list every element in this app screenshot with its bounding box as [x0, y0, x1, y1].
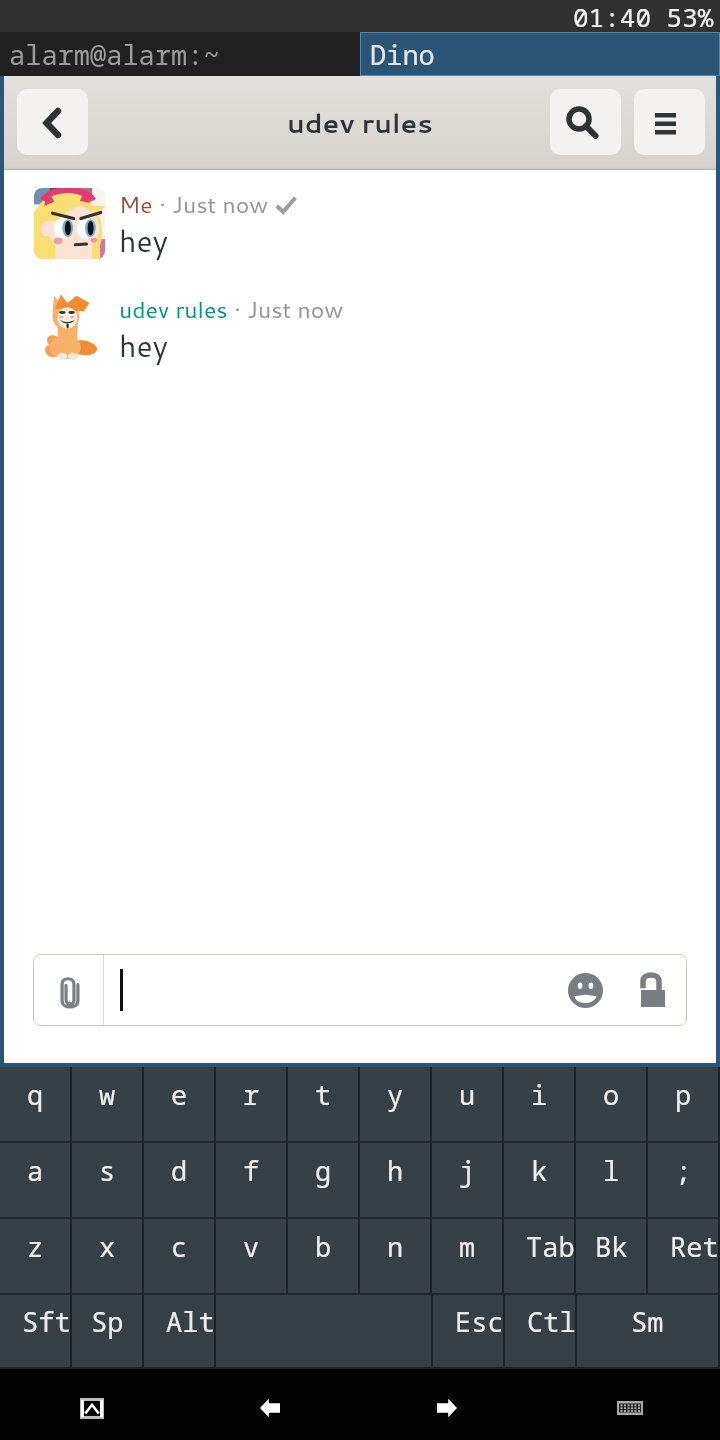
- staticText: m: [459, 1228, 476, 1265]
- button[interactable]: Ret: [648, 1219, 718, 1293]
- button[interactable]: a: [0, 1143, 70, 1217]
- staticText: hey: [119, 219, 169, 261]
- button[interactable]: x: [72, 1219, 142, 1293]
- staticText: r: [243, 1076, 260, 1113]
- button[interactable]: Encryption: [619, 956, 687, 1024]
- staticText: a: [27, 1152, 44, 1189]
- button[interactable]: Screenshot: [72, 1388, 112, 1428]
- button[interactable]: o: [576, 1067, 646, 1141]
- staticText: p: [675, 1076, 692, 1113]
- button[interactable]: y: [360, 1067, 430, 1141]
- button[interactable]: alarm@alarm:~: [0, 32, 360, 76]
- staticText: l: [603, 1152, 620, 1189]
- staticText: e: [171, 1076, 188, 1113]
- button[interactable]: q: [0, 1067, 70, 1141]
- staticText: s: [99, 1152, 116, 1189]
- staticText: h: [387, 1152, 404, 1189]
- button[interactable]: g: [288, 1143, 358, 1217]
- staticText: alarm@alarm:~: [9, 36, 220, 73]
- button[interactable]: e: [144, 1067, 214, 1141]
- staticText: z: [27, 1228, 44, 1265]
- button[interactable]: Menu: [634, 89, 705, 155]
- button[interactable]: Sm: [577, 1295, 718, 1367]
- staticText: k: [531, 1152, 548, 1189]
- staticText: n: [387, 1228, 404, 1265]
- staticText: Tab: [526, 1228, 575, 1265]
- staticText: g: [315, 1152, 332, 1189]
- button[interactable]: v: [216, 1219, 286, 1293]
- button[interactable]: k: [504, 1143, 574, 1217]
- button[interactable]: l: [576, 1143, 646, 1217]
- button[interactable]: d: [144, 1143, 214, 1217]
- staticText: j: [459, 1152, 476, 1189]
- button[interactable]: ;: [648, 1143, 718, 1217]
- button[interactable]: Keyboard: [610, 1388, 650, 1428]
- button[interactable]: c: [144, 1219, 214, 1293]
- staticText: d: [171, 1152, 188, 1189]
- button[interactable]: p: [648, 1067, 718, 1141]
- staticText: c: [171, 1228, 188, 1265]
- staticText: o: [603, 1076, 620, 1113]
- staticText: f: [243, 1152, 260, 1189]
- button[interactable]: Bk: [576, 1219, 646, 1293]
- staticText: hey: [119, 324, 169, 366]
- staticText: Esc: [455, 1303, 504, 1340]
- staticText: · Just now: [228, 293, 344, 326]
- staticText: 01:40 53%: [573, 0, 714, 31]
- staticText: y: [387, 1076, 404, 1113]
- staticText: Ret: [670, 1228, 719, 1265]
- staticText: t: [315, 1076, 332, 1113]
- button[interactable]: h: [360, 1143, 430, 1217]
- staticText: q: [27, 1076, 44, 1113]
- button[interactable]: Sft: [0, 1295, 70, 1367]
- button[interactable]: Left: [250, 1388, 290, 1428]
- staticText: Bk: [595, 1228, 628, 1265]
- button[interactable]: Search: [550, 89, 621, 155]
- button[interactable]: Alt: [144, 1295, 214, 1367]
- button[interactable]: Sp: [72, 1295, 142, 1367]
- staticText: Ctl: [527, 1303, 576, 1340]
- button[interactable]: Emoji: [551, 956, 619, 1024]
- button[interactable]: f: [216, 1143, 286, 1217]
- button[interactable]: Dino: [361, 33, 719, 75]
- button[interactable]: j: [432, 1143, 502, 1217]
- button[interactable]: Attach file: [33, 954, 103, 1026]
- staticText: Dino: [370, 36, 435, 73]
- staticText: x: [99, 1228, 116, 1265]
- button[interactable]: Right: [427, 1388, 467, 1428]
- staticText: Sp: [91, 1303, 124, 1340]
- staticText: Sft: [22, 1303, 71, 1340]
- staticText: Me: [119, 188, 153, 221]
- button[interactable]: z: [0, 1219, 70, 1293]
- button[interactable]: Esc: [433, 1295, 503, 1367]
- button[interactable]: t: [288, 1067, 358, 1141]
- staticText: u: [459, 1076, 476, 1113]
- button[interactable]: r: [216, 1067, 286, 1141]
- staticText: Sm: [631, 1303, 664, 1340]
- staticText: v: [243, 1228, 260, 1265]
- button[interactable]: w: [72, 1067, 142, 1141]
- button[interactable]: u: [432, 1067, 502, 1141]
- button[interactable]: i: [504, 1067, 574, 1141]
- button[interactable]: Tab: [504, 1219, 574, 1293]
- staticText: w: [99, 1076, 116, 1113]
- button[interactable]: s: [72, 1143, 142, 1217]
- staticText: Alt: [166, 1303, 215, 1340]
- staticText: ;: [675, 1152, 692, 1189]
- button[interactable]: m: [432, 1219, 502, 1293]
- button[interactable]: Back: [17, 89, 88, 155]
- staticText: udev rules: [119, 293, 228, 326]
- staticText: i: [531, 1076, 548, 1113]
- staticText: udev rules: [287, 103, 433, 141]
- staticText: · Just now: [153, 188, 269, 221]
- button[interactable]: n: [360, 1219, 430, 1293]
- staticText: b: [315, 1228, 332, 1265]
- button[interactable]: b: [288, 1219, 358, 1293]
- button[interactable]: Ctl: [505, 1295, 575, 1367]
